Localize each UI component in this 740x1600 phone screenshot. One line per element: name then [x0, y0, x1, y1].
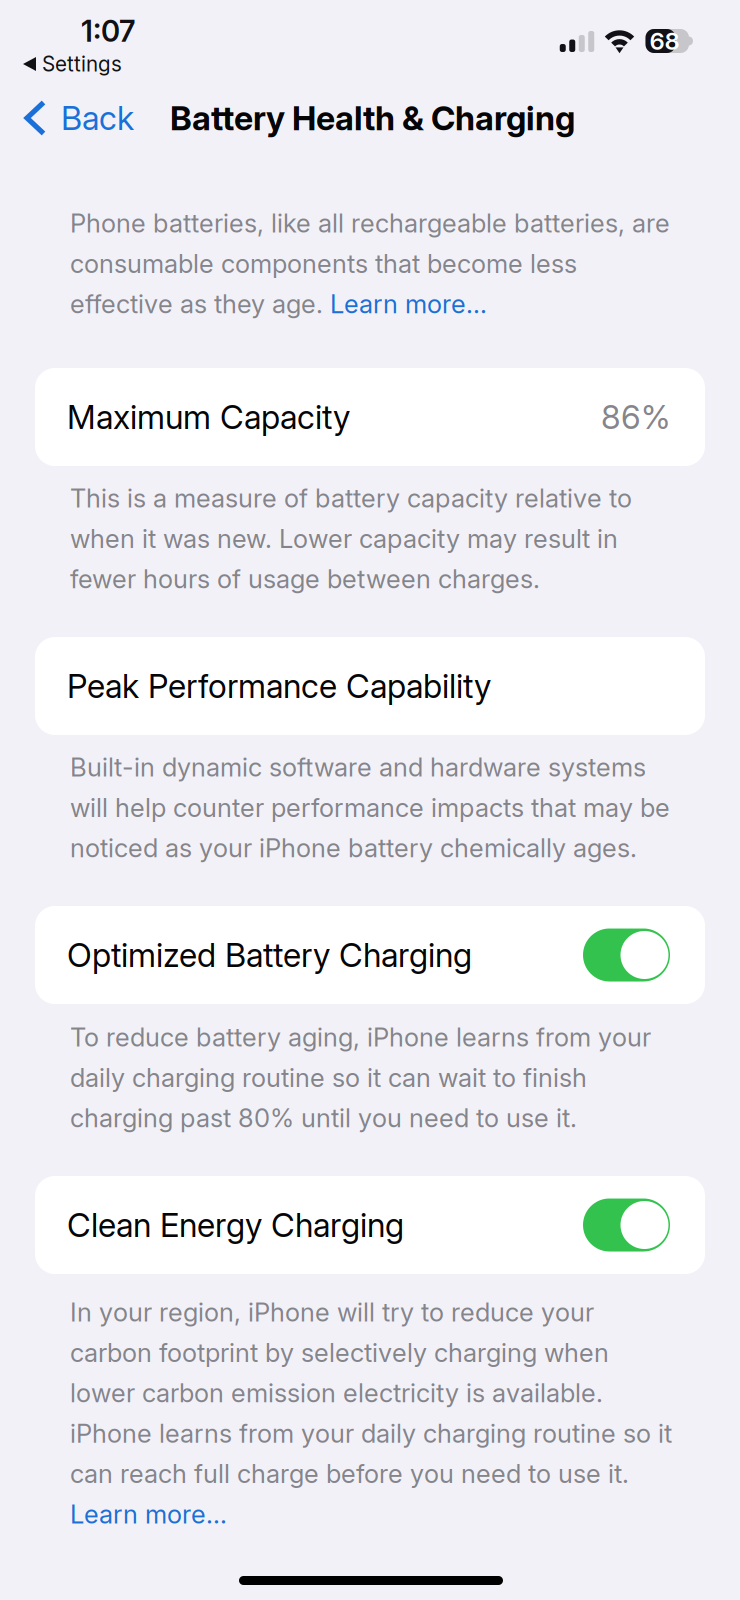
- staticText: Maximum Capacity: [67, 397, 350, 437]
- button[interactable]: Settings: [0, 0, 130, 24]
- staticText: can reach full charge before you need to…: [70, 1458, 629, 1489]
- button[interactable]: Optimized Battery Charging: [35, 906, 705, 1004]
- staticText: consumable components that become less: [70, 248, 577, 279]
- staticText: Optimized Battery Charging: [67, 935, 472, 975]
- staticText: effective as they age.: [70, 288, 330, 319]
- button[interactable]: Peak Performance Capability: [35, 637, 705, 735]
- staticText: Battery Health & Charging: [170, 98, 575, 138]
- staticText: Learn more...: [330, 288, 487, 319]
- staticText: lower carbon emission electricity is ava…: [70, 1377, 603, 1408]
- button[interactable]: Clean Energy Charging: [35, 1176, 705, 1274]
- button[interactable]: Learn more...: [70, 1499, 227, 1530]
- staticText: Built-in dynamic software and hardware s…: [70, 752, 646, 783]
- staticText: Peak Performance Capability: [67, 666, 491, 706]
- staticText: Learn more...: [70, 1499, 227, 1530]
- staticText: daily charging routine so it can wait to…: [70, 1062, 587, 1093]
- staticText: In your region, iPhone will try to reduc…: [70, 1297, 594, 1328]
- button[interactable]: Learn more...: [330, 288, 487, 319]
- staticText: iPhone learns from your daily charging r…: [70, 1418, 672, 1449]
- staticText: Clean Energy Charging: [67, 1205, 404, 1245]
- staticText: fewer hours of usage between charges.: [70, 563, 540, 594]
- staticText: will help counter performance impacts th…: [70, 792, 670, 823]
- staticText: noticed as your iPhone battery chemicall…: [70, 832, 637, 863]
- staticText: Phone batteries, like all rechargeable b…: [70, 208, 670, 239]
- button[interactable]: Back: [0, 93, 150, 143]
- staticText: 86%: [601, 397, 670, 437]
- staticText: when it was new. Lower capacity may resu…: [70, 523, 618, 554]
- staticText: charging past 80% until you need to use …: [70, 1102, 577, 1133]
- staticText: Back: [61, 98, 134, 138]
- staticText: To reduce battery aging, iPhone learns f…: [70, 1022, 651, 1053]
- staticText: 68: [649, 26, 679, 55]
- staticText: 1:07: [81, 13, 135, 49]
- staticText: carbon footprint by selectively charging…: [70, 1337, 609, 1368]
- staticText: This is a measure of battery capacity re…: [70, 483, 632, 514]
- staticText: Settings: [42, 51, 122, 76]
